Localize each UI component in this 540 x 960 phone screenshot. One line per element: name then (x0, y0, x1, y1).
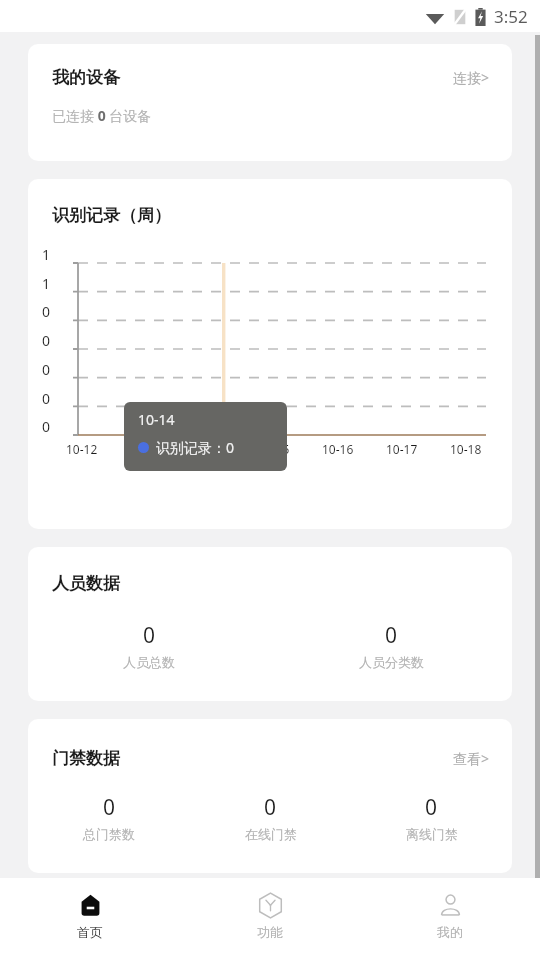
button[interactable]: 我的 (360, 878, 540, 960)
staticText: 1 (42, 245, 51, 264)
staticText: 总门禁数 (83, 826, 135, 842)
staticText: 10-18 (450, 441, 482, 457)
button[interactable]: 查看> (449, 745, 494, 772)
other: 首页 (77, 892, 104, 919)
staticText: 0 (103, 793, 116, 822)
staticText: 识别记录（周） (52, 205, 171, 226)
staticText: 0 (385, 621, 398, 650)
button[interactable]: 0 (351, 793, 512, 842)
staticText: 我的设备 (52, 67, 120, 88)
staticText: 连接> (453, 68, 490, 87)
staticText: 0 (42, 417, 51, 436)
staticText: 3:52 (494, 5, 528, 28)
staticText: 门禁数据 (52, 748, 120, 769)
staticText: 10-15 (258, 441, 290, 457)
staticText: 我的 (437, 924, 463, 940)
staticText: 识别记录：0 (156, 438, 235, 457)
staticText: 0 (264, 793, 277, 822)
staticText: 0 (42, 360, 51, 379)
button[interactable]: 功能 (180, 878, 360, 960)
other: 我的 (437, 892, 464, 919)
button[interactable]: 0 (190, 793, 351, 842)
staticText: 已连接 0 台设备 (52, 106, 152, 125)
staticText: 0 (143, 621, 156, 650)
other: 功能 (257, 892, 284, 919)
staticText: 1 (42, 274, 51, 293)
staticText: 0 (42, 331, 51, 350)
staticText: 0 (425, 793, 438, 822)
button[interactable]: 0 (28, 793, 190, 842)
staticText: 在线门禁 (245, 826, 297, 842)
staticText: 离线门禁 (406, 826, 458, 842)
staticText: 查看> (453, 749, 490, 768)
staticText: 0 (42, 302, 51, 321)
staticText: 人员数据 (52, 573, 120, 594)
staticText: 人员总数 (123, 654, 175, 670)
staticText: 10-17 (386, 441, 418, 457)
staticText: 10-14 (138, 410, 175, 429)
staticText: 首页 (77, 924, 103, 940)
staticText: 10-14 (194, 441, 226, 457)
staticText: 10-13 (130, 441, 162, 457)
staticText: 0 (42, 389, 51, 408)
button[interactable]: 连接> (449, 64, 494, 91)
staticText: 10-16 (322, 441, 354, 457)
button[interactable]: 0 (28, 621, 270, 670)
button[interactable]: 0 (270, 621, 512, 670)
button[interactable]: 首页 (0, 878, 180, 960)
staticText: 功能 (257, 924, 283, 940)
staticText: 10-12 (66, 441, 98, 457)
staticText: 人员分类数 (359, 654, 424, 670)
